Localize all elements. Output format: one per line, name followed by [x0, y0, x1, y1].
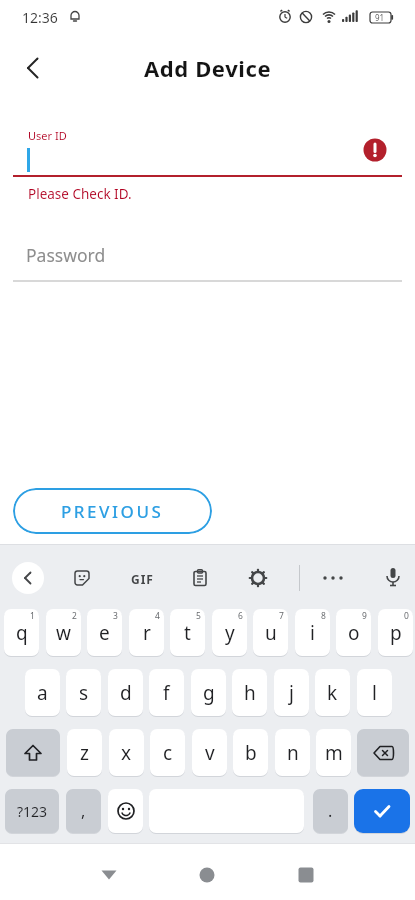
button[interactable]: . — [313, 789, 348, 833]
staticText: u — [265, 620, 277, 646]
staticText: 0 — [404, 610, 409, 622]
button[interactable] — [247, 567, 269, 589]
staticText: Password — [26, 243, 106, 267]
staticText: a — [37, 680, 48, 706]
staticText: o — [348, 620, 360, 646]
staticText: 91 — [375, 12, 385, 23]
button[interactable]: s — [66, 669, 101, 716]
button[interactable]: l — [357, 669, 392, 716]
button[interactable]: k — [315, 669, 350, 716]
button[interactable]: w — [46, 609, 81, 656]
staticText: q — [16, 620, 28, 646]
staticText: ?123 — [17, 802, 48, 821]
button[interactable]: h — [232, 669, 267, 716]
staticText: t — [184, 620, 191, 646]
staticText: p — [390, 620, 402, 646]
button[interactable]: r — [129, 609, 164, 656]
staticText: PREVIOUS — [61, 500, 164, 523]
button[interactable]: a — [25, 669, 60, 716]
button[interactable]: y — [212, 609, 247, 656]
staticText: r — [143, 620, 151, 646]
button[interactable] — [190, 858, 224, 892]
staticText: User ID — [28, 128, 67, 143]
staticText: c — [163, 740, 173, 766]
button[interactable]: , — [66, 789, 101, 833]
staticText: f — [163, 680, 170, 706]
button[interactable] — [108, 789, 143, 833]
button[interactable]: n — [275, 729, 310, 776]
staticText: s — [79, 680, 89, 706]
button[interactable] — [12, 562, 44, 594]
staticText: 6 — [238, 610, 243, 622]
staticText: h — [244, 680, 256, 706]
staticText: z — [80, 740, 89, 766]
button[interactable] — [71, 567, 93, 589]
staticText: x — [121, 740, 132, 766]
staticText: Please Check ID. — [28, 185, 132, 203]
staticText: i — [310, 620, 315, 646]
button[interactable] — [357, 729, 409, 776]
staticText: 8 — [321, 610, 326, 622]
button[interactable] — [92, 858, 126, 892]
button[interactable]: i — [295, 609, 330, 656]
button[interactable]: d — [108, 669, 143, 716]
staticText: 7 — [279, 610, 284, 622]
staticText: w — [56, 620, 71, 646]
button[interactable] — [189, 567, 211, 589]
staticText: y — [225, 620, 235, 646]
button[interactable]: b — [233, 729, 268, 776]
button[interactable] — [318, 567, 348, 589]
staticText: , — [81, 800, 86, 822]
button[interactable]: f — [149, 669, 184, 716]
staticText: 9 — [362, 610, 367, 622]
staticText: k — [327, 680, 338, 706]
button[interactable]: o — [336, 609, 371, 656]
staticText: 12:36 — [22, 8, 58, 27]
staticText: j — [289, 680, 294, 706]
staticText: e — [99, 620, 110, 646]
staticText: GIF — [131, 571, 154, 587]
button[interactable] — [18, 52, 50, 84]
button[interactable]: p — [378, 609, 413, 656]
button[interactable]: x — [109, 729, 144, 776]
staticText: 1 — [30, 610, 35, 622]
staticText: 2 — [72, 610, 77, 622]
staticText: l — [372, 680, 377, 706]
staticText: 4 — [155, 610, 160, 622]
staticText: Add Device — [144, 53, 272, 83]
staticText: 5 — [196, 610, 201, 622]
button[interactable]: e — [87, 609, 122, 656]
button[interactable]: u — [253, 609, 288, 656]
staticText: b — [245, 740, 257, 766]
button[interactable]: c — [150, 729, 185, 776]
staticText: 3 — [113, 610, 118, 622]
button[interactable]: ?123 — [5, 789, 59, 833]
staticText: . — [328, 800, 333, 822]
staticText: d — [120, 680, 132, 706]
button[interactable]: PREVIOUS — [13, 488, 212, 534]
button[interactable] — [381, 565, 405, 589]
button[interactable]: g — [191, 669, 226, 716]
button[interactable] — [6, 729, 60, 776]
button[interactable] — [289, 858, 323, 892]
button[interactable]: GIF — [127, 570, 157, 588]
staticText: v — [205, 740, 215, 766]
button[interactable] — [354, 789, 410, 833]
button[interactable]: t — [170, 609, 205, 656]
button[interactable]: j — [274, 669, 309, 716]
staticText: n — [287, 740, 299, 766]
button[interactable]: q — [4, 609, 39, 656]
button[interactable]: v — [192, 729, 227, 776]
staticText: m — [325, 740, 343, 766]
staticText: g — [203, 680, 215, 706]
button[interactable]: z — [67, 729, 102, 776]
button[interactable]: m — [316, 729, 351, 776]
